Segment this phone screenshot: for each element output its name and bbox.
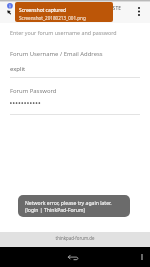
staticText: Screenshot captured [19, 7, 66, 14]
staticText: Enter your forum username and password [10, 29, 117, 36]
staticText: thinkpad-forum.de [0, 235, 150, 241]
button[interactable]: REGISTER [101, 4, 123, 19]
button[interactable]: Back [63, 247, 83, 267]
staticText: Forum Username / Email Address [10, 50, 103, 58]
staticText: Screenshot_20180213_001.png [19, 15, 86, 21]
staticText: REGISTER [101, 5, 123, 19]
staticText: (login | ThinkPad-Forum) [25, 207, 86, 214]
button[interactable]: Menu [134, 247, 149, 267]
staticText: Network error, please try again later. [25, 200, 112, 207]
button[interactable]: More options [131, 0, 147, 23]
staticText: explit [10, 65, 26, 73]
button[interactable]: Screenshot captured [15, 2, 113, 22]
staticText: Forum Password [10, 87, 57, 95]
